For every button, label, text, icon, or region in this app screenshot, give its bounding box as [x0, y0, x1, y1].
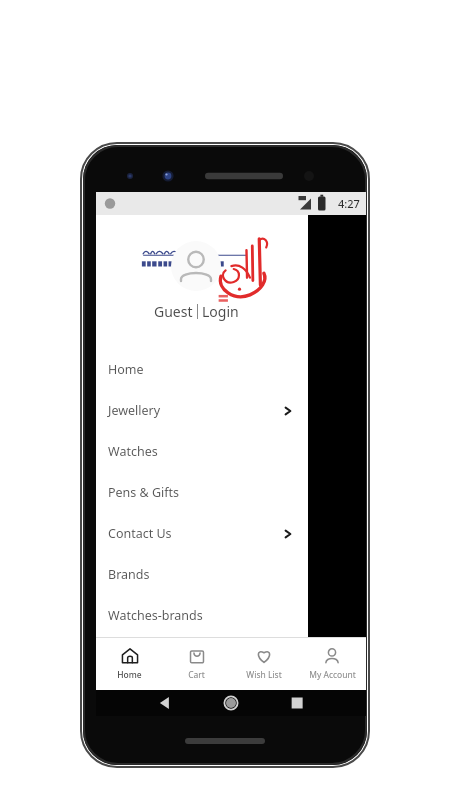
staticText: Jewellery	[108, 402, 161, 419]
button[interactable]: Brands	[96, 554, 308, 595]
button[interactable]: Watches-brands	[96, 595, 308, 636]
staticText: Watches	[108, 443, 158, 460]
button[interactable]: Guest	[154, 302, 239, 321]
staticText: Home	[108, 361, 144, 378]
button[interactable]: Watches	[96, 431, 308, 472]
staticText: Home	[117, 669, 142, 681]
button[interactable]: Account avatar	[171, 241, 221, 291]
staticText: Watches-brands	[108, 607, 203, 624]
button[interactable]: Pens & Gifts	[96, 472, 308, 513]
staticText: Brands	[108, 566, 150, 583]
button[interactable]: My Account	[298, 637, 366, 690]
staticText: Pens & Gifts	[108, 484, 180, 501]
staticText: 4:27	[338, 196, 360, 211]
button[interactable]: Cart	[163, 637, 230, 690]
staticText: Contact Us	[108, 525, 172, 542]
staticText: My Account	[309, 669, 356, 681]
staticText: Login	[202, 302, 239, 321]
button[interactable]: Wish List	[230, 637, 298, 690]
button[interactable]: Home	[96, 637, 163, 690]
staticText: Wish List	[246, 669, 282, 681]
button[interactable]: Home	[96, 349, 308, 390]
button[interactable]: Jewellery	[96, 390, 308, 431]
staticText: Guest	[154, 302, 193, 321]
button[interactable]: Contact Us	[96, 513, 308, 554]
staticText: Cart	[188, 669, 205, 681]
